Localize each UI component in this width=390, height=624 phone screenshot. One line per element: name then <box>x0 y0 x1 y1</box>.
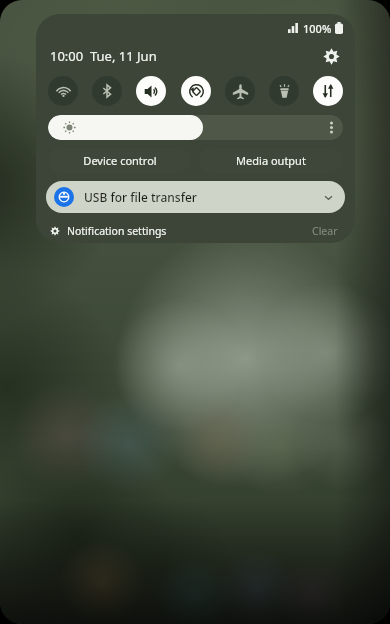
staticText: Media output <box>236 153 306 168</box>
staticText: Notification settings <box>67 224 167 238</box>
button[interactable]: USB for file transfer <box>46 181 345 213</box>
button[interactable]: Mobile data <box>313 76 343 106</box>
button[interactable]: Media output <box>199 148 343 173</box>
staticText: 100% <box>303 21 332 36</box>
staticText: USB for file transfer <box>84 189 197 205</box>
button[interactable]: Airplane mode <box>225 76 255 106</box>
button[interactable]: Notification settings <box>46 222 170 240</box>
staticText: 10:00 Tue, 11 Jun <box>50 47 157 65</box>
button[interactable]: Sound <box>136 76 166 106</box>
button[interactable]: Auto rotate <box>181 76 211 106</box>
button[interactable]: Bluetooth <box>92 76 122 106</box>
button[interactable]: Flashlight <box>269 76 299 106</box>
button[interactable]: Settings <box>319 44 343 68</box>
staticText: Clear <box>312 224 338 238</box>
button[interactable]: Device control <box>48 148 191 173</box>
staticText: Device control <box>83 153 157 168</box>
button[interactable]: Expand <box>319 188 337 206</box>
button[interactable]: Wi-Fi <box>48 76 78 106</box>
button[interactable]: Clear <box>309 222 341 240</box>
button[interactable]: Brightness <box>48 115 343 140</box>
